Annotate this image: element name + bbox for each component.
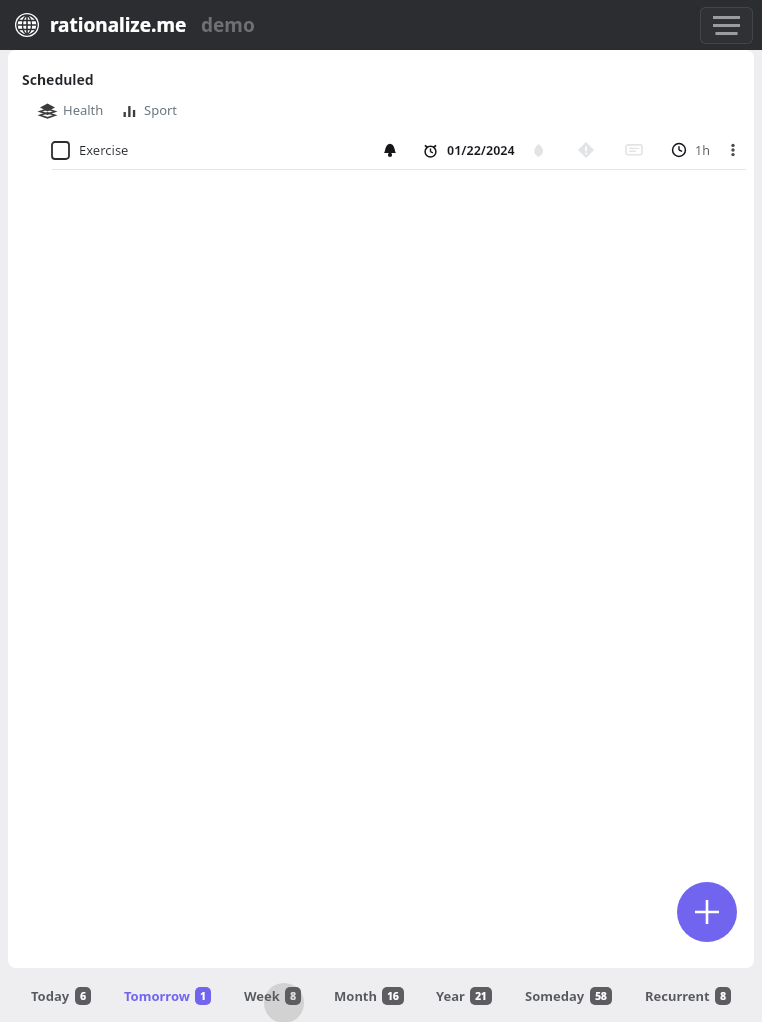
staticText: demo xyxy=(201,12,255,38)
button[interactable]: Add task xyxy=(677,882,737,942)
staticText: 1 xyxy=(200,989,206,1003)
button[interactable]: Alarm xyxy=(419,139,441,161)
staticText: 58 xyxy=(595,989,607,1003)
staticText: Today xyxy=(31,987,70,1005)
button[interactable]: Year xyxy=(436,987,492,1005)
staticText: 16 xyxy=(387,989,399,1003)
staticText: Sport xyxy=(144,101,178,119)
staticText: Year xyxy=(436,987,465,1005)
button[interactable]: Urgency xyxy=(527,139,549,161)
staticText: Month xyxy=(334,987,377,1005)
button[interactable]: Complete task xyxy=(52,131,744,169)
button[interactable]: Recurrent xyxy=(645,987,731,1005)
staticText: Exercise xyxy=(79,141,129,159)
staticText: 1h xyxy=(695,142,710,159)
button[interactable]: More options xyxy=(722,139,744,161)
button[interactable]: Notes xyxy=(623,139,645,161)
staticText: Recurrent xyxy=(645,987,710,1005)
staticText: 8 xyxy=(290,989,296,1003)
staticText: 8 xyxy=(720,989,726,1003)
button[interactable]: Tomorrow xyxy=(124,987,211,1005)
button[interactable]: Duration xyxy=(668,139,690,161)
staticText: Health xyxy=(63,101,104,119)
staticText: Someday xyxy=(525,987,585,1005)
staticText: 01/22/2024 xyxy=(447,142,515,159)
button[interactable]: Month xyxy=(334,987,404,1005)
button[interactable]: Priority xyxy=(575,139,597,161)
button[interactable]: Today xyxy=(31,987,91,1005)
button[interactable]: Complete task xyxy=(52,142,69,159)
staticText: rationalize.me xyxy=(50,12,187,38)
staticText: 6 xyxy=(80,989,86,1003)
button[interactable]: Reminder xyxy=(379,139,401,161)
staticText: 21 xyxy=(475,989,487,1003)
button[interactable]: Week xyxy=(244,987,301,1005)
button[interactable]: Someday xyxy=(525,987,612,1005)
staticText: Scheduled xyxy=(22,70,94,89)
staticText: Tomorrow xyxy=(124,987,190,1005)
button[interactable]: Menu xyxy=(700,7,753,44)
staticText: Week xyxy=(244,987,280,1005)
